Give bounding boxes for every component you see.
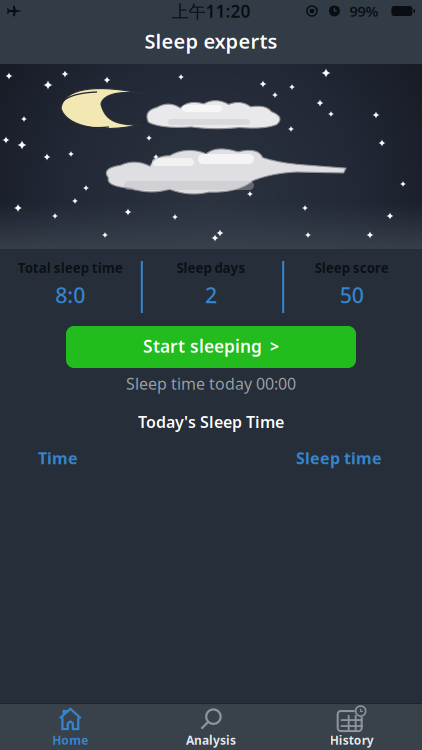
- staticText: 8:0: [55, 281, 85, 309]
- staticText: Sleep time today 00:00: [126, 373, 296, 394]
- button[interactable]: Start sleeping: [66, 326, 356, 368]
- staticText: Analysis: [186, 732, 236, 748]
- staticText: Home: [52, 732, 88, 748]
- staticText: Time: [38, 447, 78, 469]
- button[interactable]: Analysis: [141, 708, 281, 748]
- staticText: >: [270, 335, 279, 357]
- staticText: Sleep days: [176, 259, 245, 277]
- staticText: 99%: [349, 1, 378, 21]
- staticText: Total sleep time: [18, 259, 123, 277]
- button[interactable]: Home: [0, 708, 141, 748]
- button[interactable]: History: [281, 708, 422, 748]
- staticText: 50: [340, 281, 364, 309]
- staticText: History: [330, 732, 374, 748]
- staticText: Today's Sleep Time: [138, 411, 284, 432]
- staticText: Start sleeping: [143, 334, 262, 357]
- staticText: 2: [205, 281, 217, 309]
- staticText: 上午11:20: [171, 0, 250, 22]
- staticText: Sleep experts: [144, 28, 277, 54]
- staticText: Sleep time: [296, 447, 382, 469]
- staticText: Sleep score: [315, 259, 389, 277]
